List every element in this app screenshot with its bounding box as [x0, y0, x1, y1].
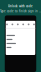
staticText: Type code to finish sign in now: [0, 9, 41, 13]
staticText: Unlock with code: [8, 4, 33, 8]
